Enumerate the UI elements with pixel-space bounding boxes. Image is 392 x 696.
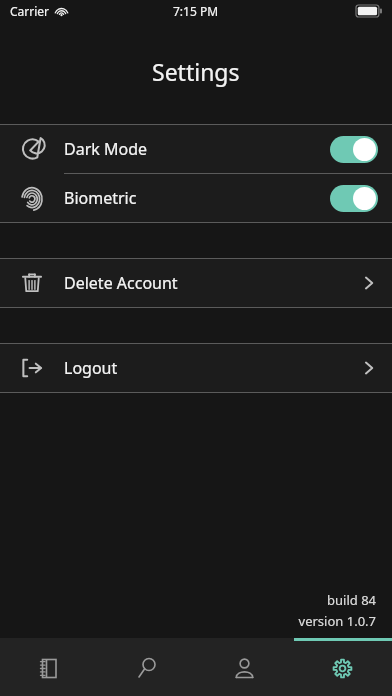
button[interactable]: Dark Mode — [0, 125, 392, 173]
button[interactable]: Toggle on — [330, 185, 378, 212]
staticText: Dark Mode — [64, 138, 330, 160]
staticText: Settings — [152, 56, 240, 87]
button[interactable]: Search — [98, 638, 196, 696]
button[interactable]: Logout — [0, 344, 392, 392]
staticText: Delete Account — [64, 272, 360, 294]
button[interactable]: Profile — [196, 638, 294, 696]
staticText: build 84 — [327, 591, 376, 609]
button[interactable]: Settings — [294, 638, 392, 696]
button[interactable]: Delete Account — [0, 259, 392, 307]
staticText: Carrier — [10, 3, 50, 19]
staticText: Biometric — [64, 187, 330, 209]
staticText: 7:15 PM — [173, 3, 219, 19]
button[interactable]: Biometric — [0, 174, 392, 222]
button[interactable]: Notebook — [0, 638, 98, 696]
staticText: version 1.0.7 — [298, 612, 376, 630]
button[interactable]: Toggle on — [330, 136, 378, 163]
staticText: Logout — [64, 357, 360, 379]
